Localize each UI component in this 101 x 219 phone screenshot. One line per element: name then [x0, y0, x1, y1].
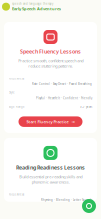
staticText: Practice smooth, confident speech and re… [18, 58, 83, 69]
staticText: speech and language therapy [12, 2, 53, 5]
staticText: Focus Areas [9, 193, 24, 196]
button[interactable]: Chat with us [82, 199, 96, 213]
staticText: Rhyming · Blending · Letter Sounds [41, 198, 92, 202]
staticText: Rate Control · Easy Onset · Paced Breath… [32, 82, 92, 86]
staticText: Style [9, 91, 15, 94]
staticText: Build essential pre-reading skills and p… [19, 174, 82, 185]
staticText: Speech Fluency Lessons [20, 48, 81, 55]
staticText: Playful · Heartfelt · Confident · Friend… [36, 96, 92, 100]
staticText: Focus Areas [9, 77, 24, 80]
staticText: Age Range [9, 105, 25, 108]
button[interactable]: Start Fluency Practice → [18, 116, 82, 127]
staticText: Early Speech Adventures [12, 6, 61, 11]
staticText: 3–7 years [80, 105, 92, 108]
staticText: Reading Readiness Lessons [16, 164, 85, 171]
staticText: Start Fluency Practice → [26, 119, 74, 124]
